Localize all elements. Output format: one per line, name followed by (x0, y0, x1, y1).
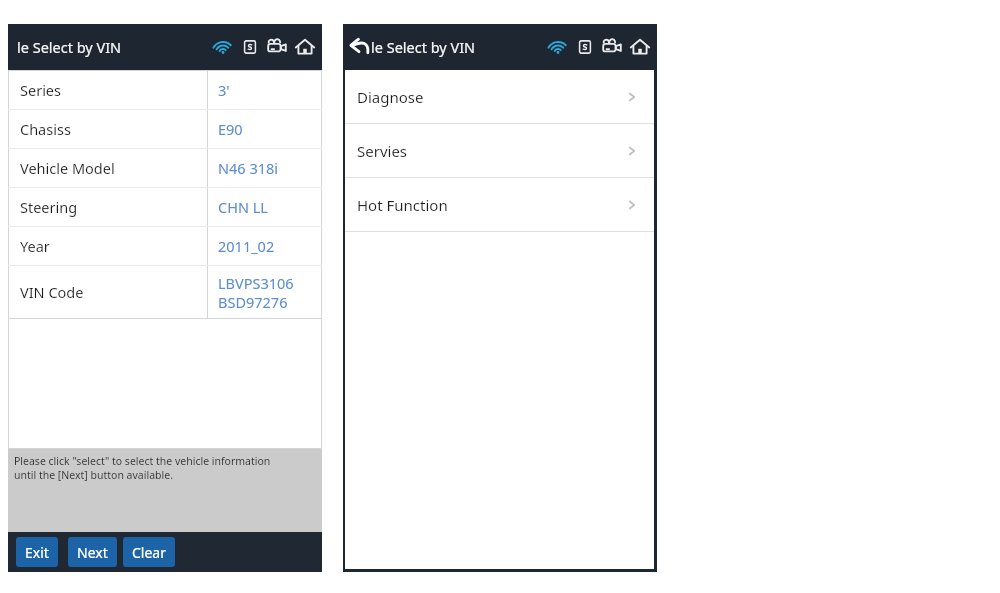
staticText: Exit (25, 543, 49, 562)
button[interactable]: Clear (123, 537, 175, 567)
staticText: Hot Function (357, 195, 624, 215)
staticText: Series (20, 80, 61, 100)
button[interactable]: Hot Function (343, 178, 657, 231)
staticText: Vehicle Model (20, 158, 115, 178)
staticText: Servies (357, 141, 624, 161)
button[interactable]: Next (68, 537, 117, 567)
button[interactable]: Year (8, 227, 322, 265)
button[interactable]: Vehicle Model (8, 149, 322, 187)
staticText: CHN LL (218, 197, 268, 217)
staticText: Year (20, 236, 50, 256)
button[interactable]: Screenshot (576, 38, 594, 56)
button[interactable]: Wi-Fi (212, 36, 234, 58)
staticText: Next (77, 543, 108, 562)
staticText: Chasiss (20, 119, 71, 139)
button[interactable]: Exit (16, 537, 58, 567)
button[interactable]: Chasiss (8, 110, 322, 148)
button[interactable]: Steering (8, 188, 322, 226)
staticText: Steering (20, 197, 78, 217)
button[interactable]: Screenshot (241, 38, 259, 56)
button[interactable]: Record video (601, 36, 623, 58)
button[interactable]: Home (294, 36, 316, 58)
staticText: LBVPS3106 BSD97276 (218, 273, 321, 312)
button[interactable]: Servies (343, 124, 657, 177)
staticText: E90 (218, 119, 243, 139)
staticText: Clear (132, 543, 166, 562)
staticText: VIN Code (20, 282, 84, 302)
button[interactable]: Home (629, 36, 651, 58)
button[interactable]: Diagnose (343, 70, 657, 123)
staticText: 2011_02 (218, 236, 275, 256)
staticText: le Select by VIN (371, 37, 476, 57)
staticText: 3' (218, 80, 230, 100)
button[interactable]: VIN Code (8, 266, 322, 318)
staticText: le Select by VIN (17, 37, 122, 57)
button[interactable]: Wi-Fi (547, 36, 569, 58)
button[interactable]: Series (8, 71, 322, 109)
staticText: N46 318i (218, 158, 279, 178)
button[interactable]: Back (347, 34, 373, 60)
button[interactable]: Record video (266, 36, 288, 58)
staticText: Diagnose (357, 87, 624, 107)
staticText: Please click "select" to select the vehi… (14, 454, 271, 482)
